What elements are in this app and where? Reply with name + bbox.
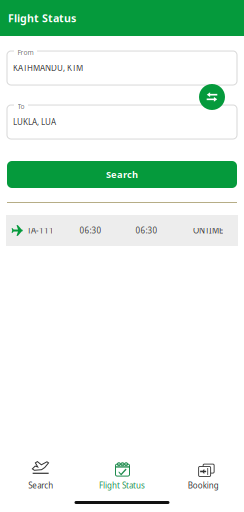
staticText: 06:30 bbox=[79, 225, 101, 236]
staticText: Flight Status bbox=[8, 11, 76, 25]
staticText: Flight Status bbox=[99, 480, 145, 491]
button[interactable]: Swap origin and destination bbox=[199, 84, 225, 110]
staticText: KATHMANDU, KTM bbox=[13, 63, 83, 73]
staticText: ONTIME bbox=[193, 225, 223, 236]
button[interactable]: TA-111 bbox=[0, 215, 244, 246]
staticText: Booking bbox=[188, 480, 219, 491]
staticText: From bbox=[17, 48, 33, 57]
staticText: 06:30 bbox=[135, 225, 157, 236]
staticText: Search bbox=[106, 168, 138, 181]
button[interactable]: Search bbox=[7, 161, 237, 188]
button[interactable]: Search bbox=[0, 458, 81, 500]
staticText: TA-111 bbox=[27, 225, 54, 236]
staticText: Search bbox=[28, 480, 53, 491]
button[interactable]: Flight Status bbox=[81, 458, 163, 500]
button[interactable]: Booking bbox=[163, 458, 244, 500]
staticText: LUKLA, LUA bbox=[13, 117, 56, 127]
staticText: To bbox=[17, 102, 24, 111]
